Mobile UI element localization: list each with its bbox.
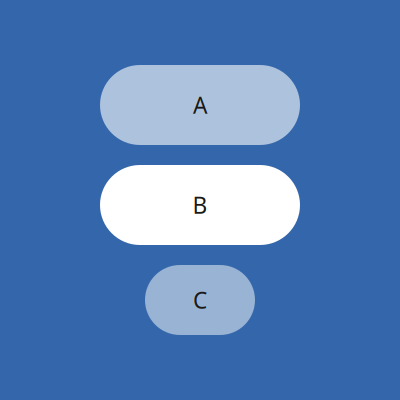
staticText: C — [193, 285, 207, 315]
staticText: B — [192, 190, 207, 220]
staticText: A — [193, 90, 207, 120]
